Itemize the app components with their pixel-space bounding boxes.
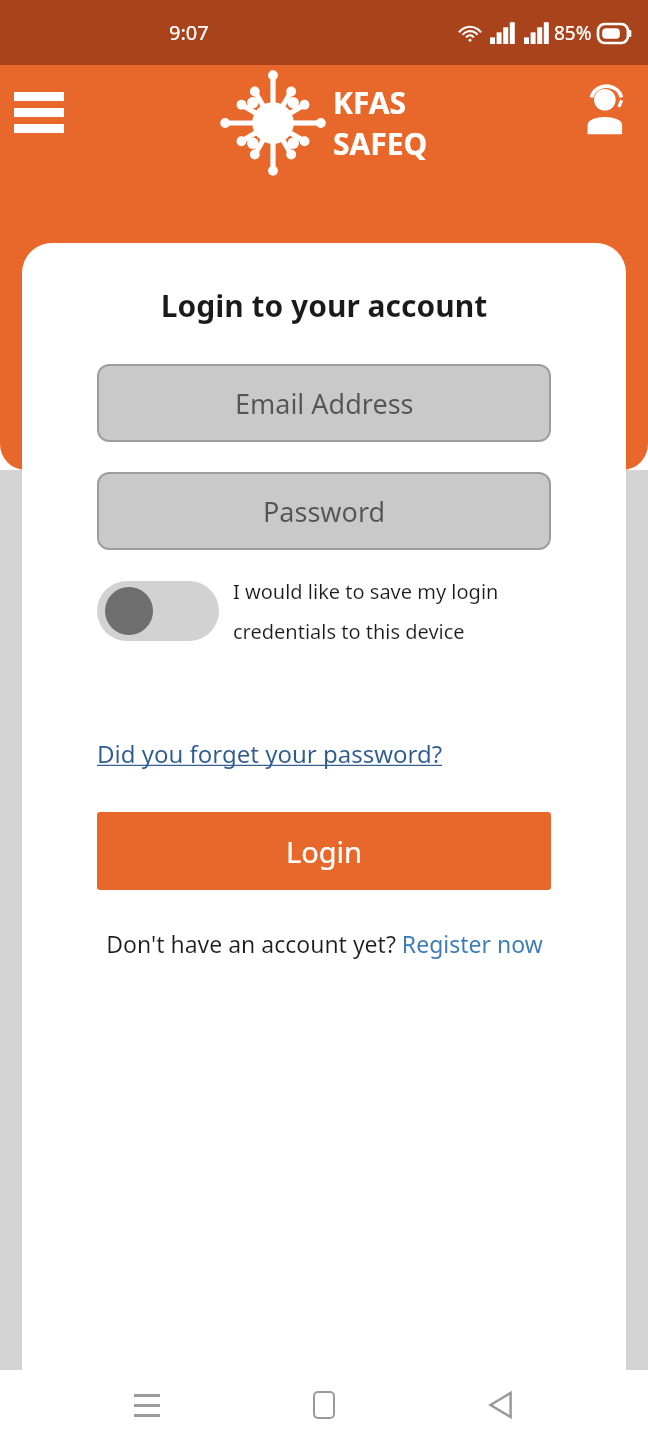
button[interactable]: Password <box>97 472 551 550</box>
button[interactable]: Did you forget your password? <box>97 737 443 770</box>
button[interactable]: Recents <box>117 1375 177 1435</box>
button[interactable]: Login <box>97 812 551 890</box>
staticText: Don't have an account yet? Register now <box>106 928 543 959</box>
staticText: Login <box>286 832 362 871</box>
staticText: Did you forget your password? <box>97 737 443 770</box>
button[interactable]: Back <box>471 1375 531 1435</box>
button[interactable]: Don't have an account yet? Register now <box>22 928 626 959</box>
button[interactable]: I would like to save my login credential… <box>97 578 586 644</box>
staticText: Password <box>263 493 386 530</box>
button[interactable]: Home <box>294 1375 354 1435</box>
staticText: 9:07 <box>169 19 209 46</box>
staticText: Email Address <box>235 385 414 422</box>
staticText: SAFEQ <box>333 123 428 164</box>
button[interactable]: Menu <box>6 79 72 145</box>
staticText: KFAS <box>333 82 407 123</box>
button[interactable]: Support <box>576 79 638 141</box>
button[interactable]: Email Address <box>97 364 551 442</box>
staticText: I would like to save my login credential… <box>233 578 586 644</box>
staticText: Login to your account <box>22 285 626 326</box>
staticText: 85% <box>554 20 592 46</box>
